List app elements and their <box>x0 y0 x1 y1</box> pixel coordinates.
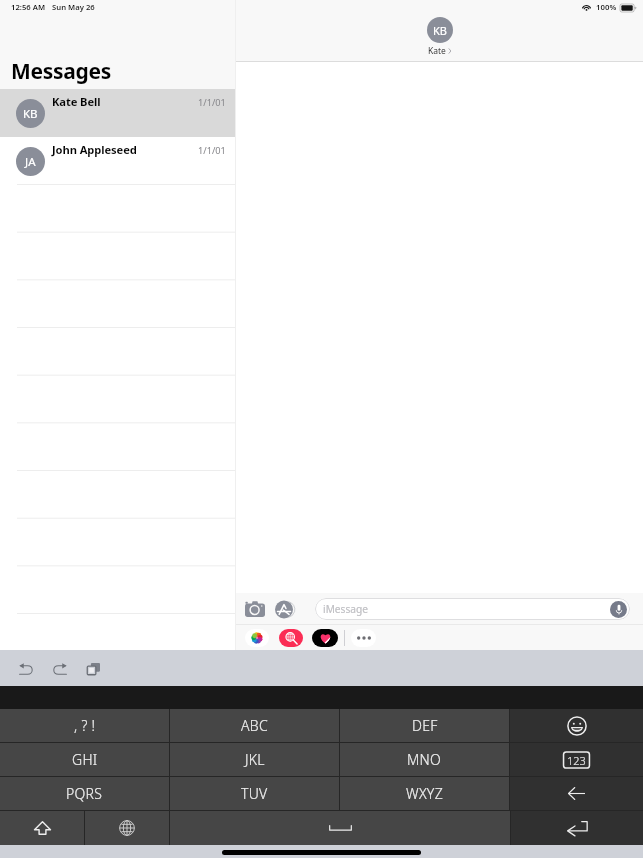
staticText: TUV <box>241 784 268 803</box>
button[interactable]: Dictate <box>610 601 627 618</box>
staticText: JA <box>25 154 36 170</box>
button[interactable]: WXYZ <box>340 777 509 810</box>
staticText: iMessage <box>323 602 369 616</box>
staticText: DEF <box>412 716 438 735</box>
staticText: John Appleseed <box>52 142 137 157</box>
button[interactable]: App Store <box>272 596 298 622</box>
button[interactable]: JA <box>0 137 235 185</box>
button[interactable]: Photos <box>245 629 269 647</box>
staticText: Messages <box>11 57 111 86</box>
button[interactable]: Enter <box>511 811 643 845</box>
button[interactable]: DEF <box>340 709 509 742</box>
button[interactable]: GHI <box>0 743 169 776</box>
button[interactable]: , ? ! <box>0 709 169 742</box>
staticText: ABC <box>241 716 268 735</box>
staticText: GHI <box>72 750 98 769</box>
staticText: 12:56 AM <box>11 2 46 12</box>
staticText: PQRS <box>66 784 103 803</box>
staticText: KB <box>23 106 38 122</box>
staticText: 123 <box>567 753 586 768</box>
button[interactable]: Language <box>85 811 169 845</box>
button[interactable]: Digital Touch <box>312 629 338 647</box>
button[interactable]: More <box>351 629 376 647</box>
staticText: KB <box>433 23 447 38</box>
button[interactable]: Emoji <box>510 709 643 742</box>
button[interactable]: Images <box>279 629 303 647</box>
staticText: 1/1/01 <box>198 96 226 109</box>
staticText: , ? ! <box>74 716 96 735</box>
button[interactable]: Backspace <box>510 777 643 810</box>
button[interactable]: MNO <box>340 743 509 776</box>
staticText: MNO <box>407 750 442 769</box>
button[interactable]: Undo <box>11 654 40 683</box>
button[interactable]: PQRS <box>0 777 169 810</box>
button[interactable]: TUV <box>170 777 339 810</box>
button[interactable]: Space <box>170 811 510 845</box>
button[interactable]: Paste <box>79 654 108 683</box>
button[interactable]: Numbers <box>510 743 643 776</box>
button[interactable]: JKL <box>170 743 339 776</box>
staticText: JKL <box>245 750 265 769</box>
button[interactable]: iMessage <box>315 598 630 620</box>
button[interactable]: ABC <box>170 709 339 742</box>
button[interactable]: KB <box>427 17 453 57</box>
button[interactable]: KB <box>0 89 235 137</box>
staticText: Sun May 26 <box>52 2 95 12</box>
button[interactable]: Redo <box>45 654 74 683</box>
button[interactable]: Camera <box>242 596 268 622</box>
staticText: 100% <box>596 2 617 13</box>
button[interactable]: Shift <box>0 811 84 845</box>
staticText: WXYZ <box>406 784 443 803</box>
staticText: Kate Bell <box>52 94 101 109</box>
staticText: Kate <box>428 45 446 57</box>
staticText: 1/1/01 <box>198 144 226 157</box>
